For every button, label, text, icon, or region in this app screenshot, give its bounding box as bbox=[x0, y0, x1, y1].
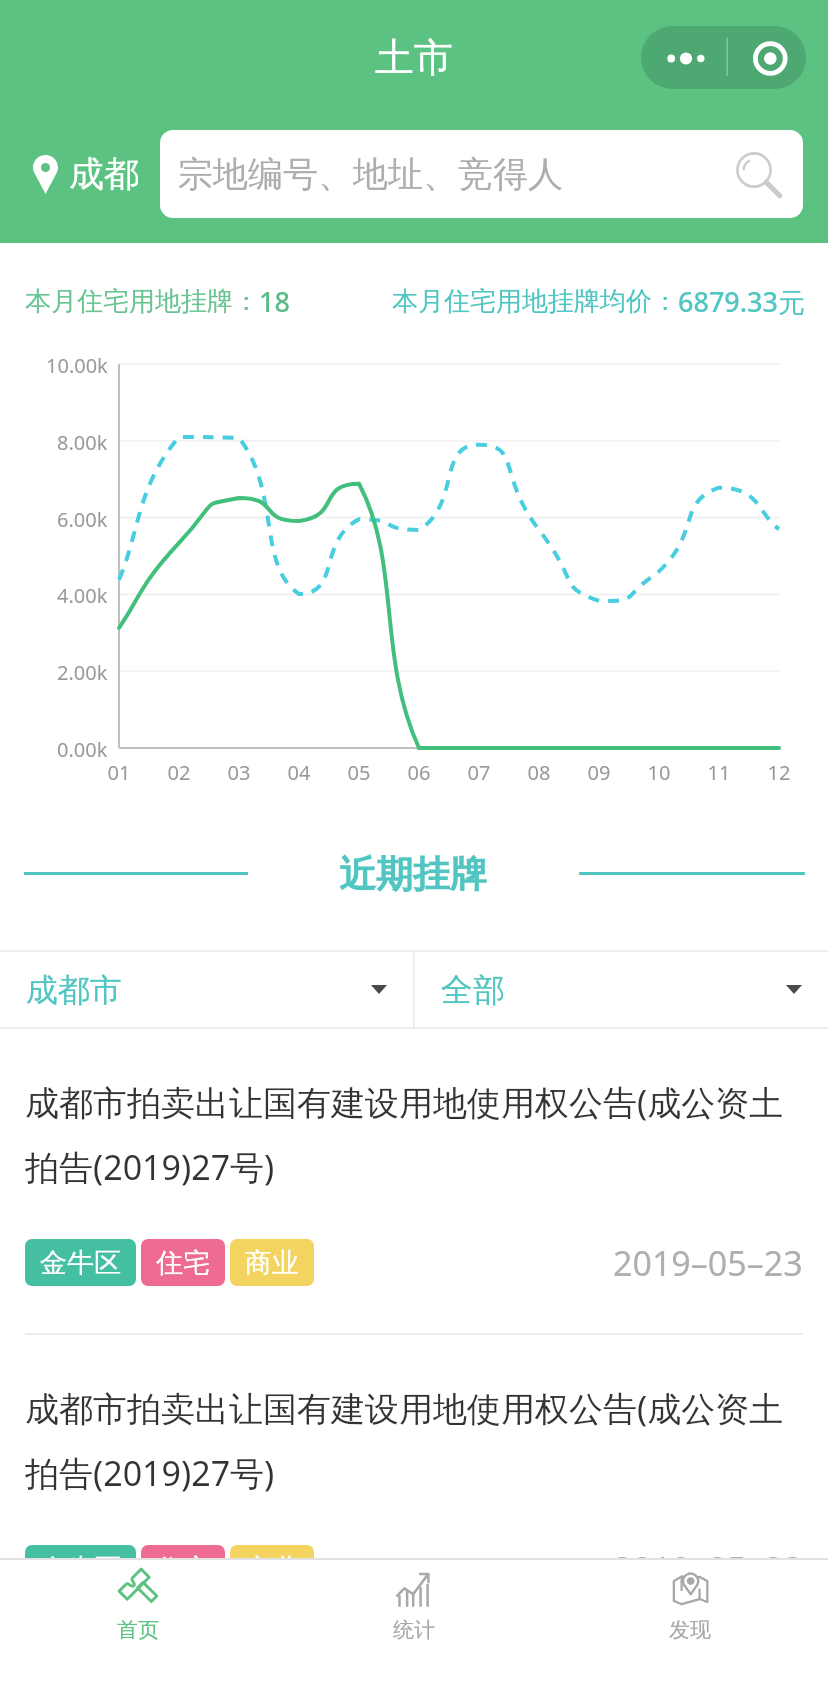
button[interactable]: More options and close bbox=[641, 26, 806, 89]
staticText: 发现 bbox=[669, 1617, 711, 1643]
staticText: 03 bbox=[214, 759, 264, 786]
staticText: 成都 bbox=[69, 152, 139, 196]
staticText: 土市 bbox=[375, 33, 453, 82]
staticText: 12 bbox=[754, 759, 804, 786]
button[interactable]: 发现 bbox=[552, 1560, 828, 1687]
staticText: 2019–05–23 bbox=[613, 1240, 803, 1286]
staticText: 金牛区 bbox=[40, 1552, 121, 1586]
button[interactable]: 宗地编号、地址、竞得人 bbox=[160, 130, 803, 218]
button[interactable]: 首页 bbox=[0, 1560, 276, 1687]
staticText: 04 bbox=[274, 759, 324, 786]
staticText: 住宅 bbox=[156, 1246, 210, 1280]
staticText: 07 bbox=[454, 759, 504, 786]
button[interactable]: 成都 bbox=[33, 152, 139, 196]
staticText: 2019–05–23 bbox=[613, 1546, 803, 1592]
staticText: 成都市拍卖出让国有建设用地使用权公告(成公资土拍告(2019)27号) bbox=[25, 1385, 803, 1497]
staticText: 0.00k bbox=[57, 736, 108, 763]
staticText: 4.00k bbox=[57, 582, 108, 609]
staticText: 本月住宅用地挂牌： bbox=[25, 285, 259, 318]
staticText: 18 bbox=[259, 283, 290, 320]
staticText: 01 bbox=[94, 759, 144, 786]
staticText: 08 bbox=[514, 759, 564, 786]
staticText: 10.00k bbox=[46, 352, 108, 379]
staticText: 05 bbox=[334, 759, 384, 786]
staticText: 6879.33元 bbox=[678, 283, 806, 320]
staticText: 02 bbox=[154, 759, 204, 786]
staticText: 11 bbox=[694, 759, 744, 786]
staticText: 商业 bbox=[245, 1552, 299, 1586]
staticText: 6.00k bbox=[57, 506, 108, 533]
button[interactable]: 成都市拍卖出让国有建设用地使用权公告(成公资土拍告(2019)27号) bbox=[0, 1335, 828, 1639]
button[interactable]: 全部 bbox=[415, 952, 828, 1027]
staticText: 首页 bbox=[117, 1617, 159, 1643]
staticText: 成都市拍卖出让国有建设用地使用权公告(成公资土拍告(2019)27号) bbox=[25, 1079, 803, 1191]
staticText: 8.00k bbox=[57, 429, 108, 456]
button[interactable]: 成都市 bbox=[0, 952, 413, 1027]
staticText: 成都市 bbox=[26, 970, 122, 1010]
staticText: 商业 bbox=[245, 1246, 299, 1280]
staticText: 全部 bbox=[441, 970, 505, 1010]
staticText: 近期挂牌 bbox=[339, 851, 487, 898]
other: Search bbox=[737, 154, 787, 204]
button[interactable]: 统计 bbox=[276, 1560, 552, 1687]
staticText: 10 bbox=[634, 759, 684, 786]
staticText: 06 bbox=[394, 759, 444, 786]
staticText: 住宅 bbox=[156, 1552, 210, 1586]
button[interactable]: 成都市拍卖出让国有建设用地使用权公告(成公资土拍告(2019)27号) bbox=[0, 1029, 828, 1333]
staticText: 09 bbox=[574, 759, 624, 786]
staticText: 2.00k bbox=[57, 659, 108, 686]
staticText: 宗地编号、地址、竞得人 bbox=[178, 152, 563, 196]
staticText: 本月住宅用地挂牌均价： bbox=[392, 285, 678, 318]
staticText: 统计 bbox=[393, 1617, 435, 1643]
staticText: 金牛区 bbox=[40, 1246, 121, 1280]
